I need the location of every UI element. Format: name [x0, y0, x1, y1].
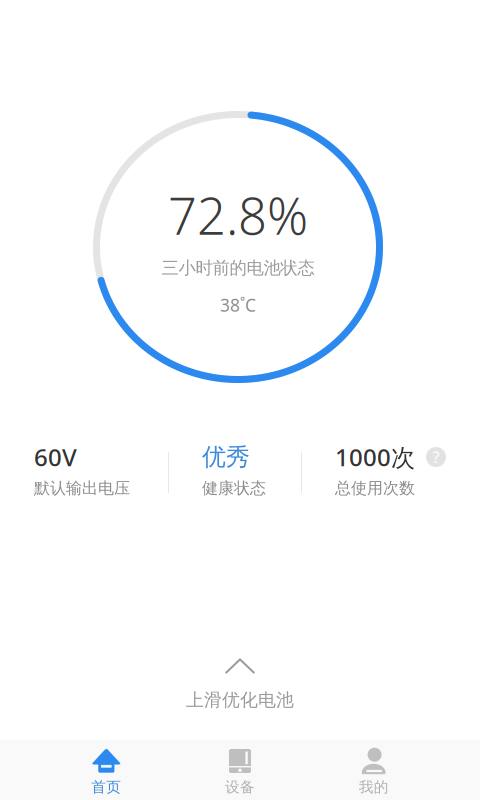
button[interactable]: 设备: [173, 740, 307, 800]
staticText: 72.8%: [168, 181, 308, 249]
staticText: 总使用次数: [335, 478, 415, 498]
staticText: 三小时前的电池状态: [161, 257, 314, 279]
button[interactable]: 首页: [39, 740, 173, 800]
staticText: 我的: [359, 778, 389, 796]
staticText: 38˚C: [220, 293, 256, 316]
staticText: 设备: [225, 778, 255, 796]
staticText: 默认输出电压: [34, 478, 130, 498]
staticText: 上滑优化电池: [186, 689, 294, 711]
staticText: 首页: [91, 778, 121, 796]
staticText: 1000次: [335, 441, 415, 473]
staticText: ?: [432, 446, 439, 468]
staticText: 60V: [34, 441, 77, 473]
button[interactable]: 我的: [307, 740, 440, 800]
staticText: 健康状态: [202, 478, 266, 498]
staticText: 优秀: [202, 442, 250, 472]
